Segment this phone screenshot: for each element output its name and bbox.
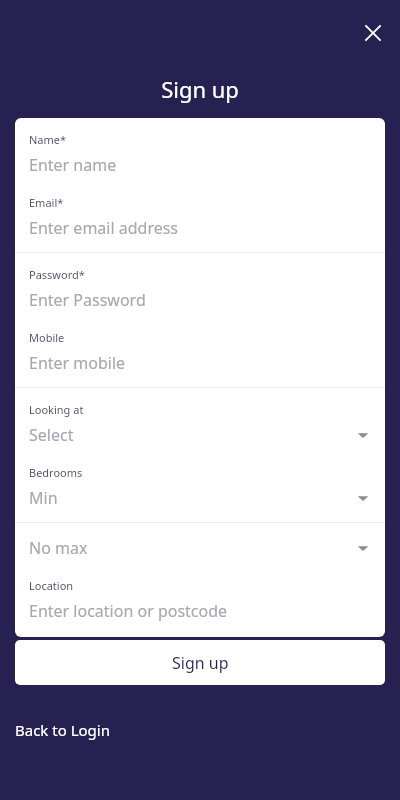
- staticText: Location: [29, 578, 74, 593]
- button[interactable]: Looking at: [15, 392, 385, 455]
- staticText: Sign up: [0, 74, 400, 104]
- staticText: Email*: [29, 195, 64, 210]
- staticText: Enter name: [29, 154, 117, 176]
- staticText: No max: [29, 537, 88, 559]
- staticText: Enter Password: [29, 289, 146, 311]
- button[interactable]: Name*: [15, 122, 385, 185]
- staticText: Back to Login: [15, 720, 110, 740]
- button[interactable]: No max: [15, 527, 385, 568]
- staticText: Enter mobile: [29, 352, 126, 374]
- staticText: Enter email address: [29, 217, 179, 239]
- staticText: Password*: [29, 267, 85, 282]
- staticText: Enter location or postcode: [29, 600, 228, 622]
- staticText: Select: [29, 424, 74, 446]
- button[interactable]: Sign up: [15, 640, 385, 685]
- button[interactable]: Close: [355, 15, 391, 51]
- button[interactable]: Password*: [15, 257, 385, 320]
- staticText: Bedrooms: [29, 465, 83, 480]
- staticText: Looking at: [29, 402, 84, 417]
- staticText: Name*: [29, 132, 67, 147]
- button[interactable]: Bedrooms: [15, 455, 385, 518]
- button[interactable]: Mobile: [15, 320, 385, 383]
- button[interactable]: Email*: [15, 185, 385, 248]
- button[interactable]: Back to Login: [15, 716, 110, 744]
- button[interactable]: Location: [15, 568, 385, 631]
- staticText: Mobile: [29, 330, 65, 345]
- staticText: Sign up: [172, 652, 229, 674]
- staticText: Min: [29, 487, 58, 509]
